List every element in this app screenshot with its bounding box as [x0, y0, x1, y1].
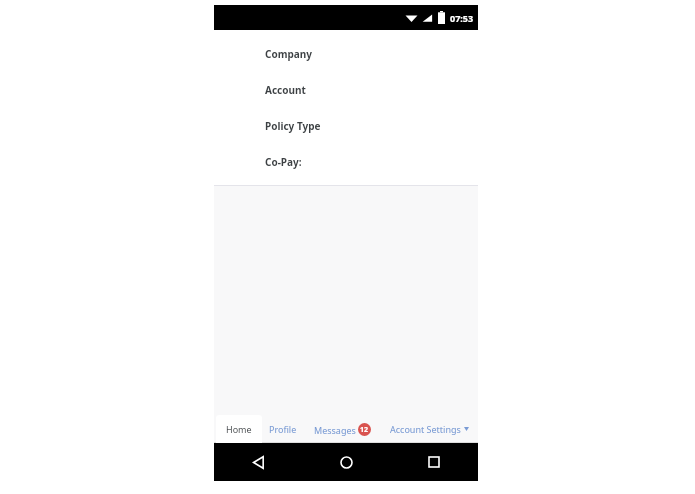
button[interactable]: Home [216, 415, 262, 443]
button[interactable]: Messages [304, 415, 380, 443]
staticText: Policy Type [265, 119, 321, 133]
staticText: Account [265, 83, 306, 97]
staticText: Messages [314, 424, 356, 436]
staticText: Co-Pay: [265, 155, 302, 169]
button[interactable]: Home [302, 443, 390, 481]
button[interactable]: Co-Pay: [214, 154, 478, 170]
staticText: Company [265, 47, 312, 61]
button[interactable]: Account Settings [380, 415, 478, 443]
button[interactable]: Account [214, 82, 478, 98]
staticText: Account Settings [390, 423, 461, 435]
staticText: 07:53 [450, 12, 474, 24]
button[interactable]: Company [214, 46, 478, 62]
button[interactable]: Back [214, 443, 302, 481]
staticText: Profile [269, 423, 297, 435]
staticText: Home [226, 423, 252, 435]
button[interactable]: Recent apps [390, 443, 478, 481]
button[interactable]: Policy Type [214, 118, 478, 134]
staticText: 12 [360, 425, 369, 435]
button[interactable]: Profile [262, 415, 304, 443]
